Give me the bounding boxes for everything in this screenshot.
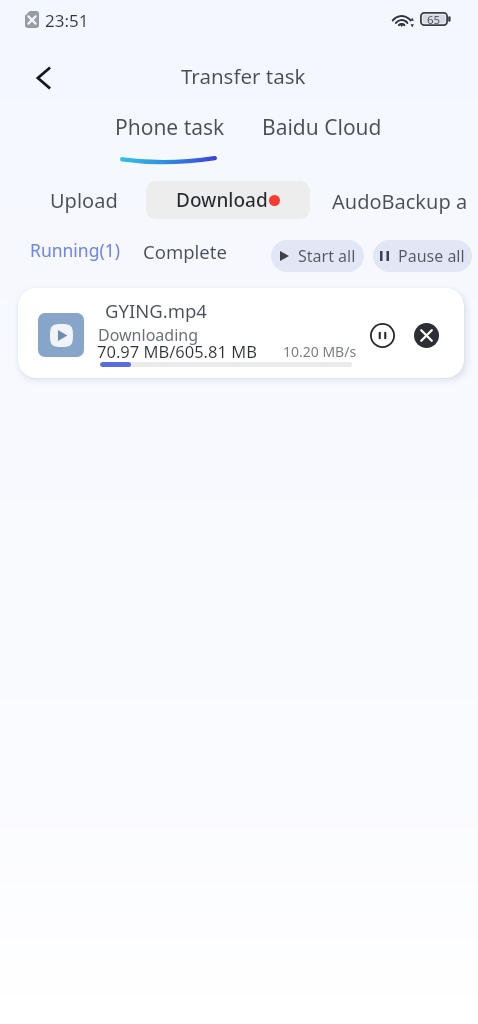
- button[interactable]: Start all: [271, 240, 364, 272]
- staticText: Pause all: [398, 245, 465, 267]
- button[interactable]: Pause: [364, 317, 400, 353]
- staticText: Phone task: [115, 113, 225, 142]
- staticText: 65: [427, 12, 441, 28]
- staticText: 10.20 MB/s: [283, 342, 357, 361]
- staticText: 70.97 MB/605.81 MB: [97, 340, 257, 362]
- button[interactable]: AudoBackup a: [328, 184, 472, 219]
- button[interactable]: Complete: [139, 235, 231, 268]
- staticText: Download: [176, 187, 268, 213]
- staticText: Complete: [143, 239, 227, 264]
- button[interactable]: GYING.mp4: [18, 288, 464, 378]
- staticText: Downloading: [98, 324, 198, 346]
- staticText: Baidu Cloud: [262, 113, 382, 142]
- button[interactable]: Back: [26, 60, 62, 96]
- button[interactable]: Cancel: [408, 317, 444, 353]
- staticText: AudoBackup a: [332, 188, 468, 215]
- button[interactable]: Upload: [46, 183, 122, 218]
- button[interactable]: Phone task: [101, 107, 239, 148]
- button[interactable]: Download: [146, 181, 310, 219]
- staticText: Running(1): [30, 238, 120, 262]
- staticText: GYING.mp4: [105, 298, 207, 323]
- button[interactable]: Running(1): [26, 234, 124, 266]
- button[interactable]: Baidu Cloud: [239, 107, 396, 148]
- staticText: Upload: [50, 187, 118, 214]
- button[interactable]: Pause all: [373, 240, 472, 272]
- staticText: 23:51: [45, 9, 89, 32]
- staticText: Start all: [298, 245, 356, 267]
- staticText: Transfer task: [181, 62, 306, 90]
